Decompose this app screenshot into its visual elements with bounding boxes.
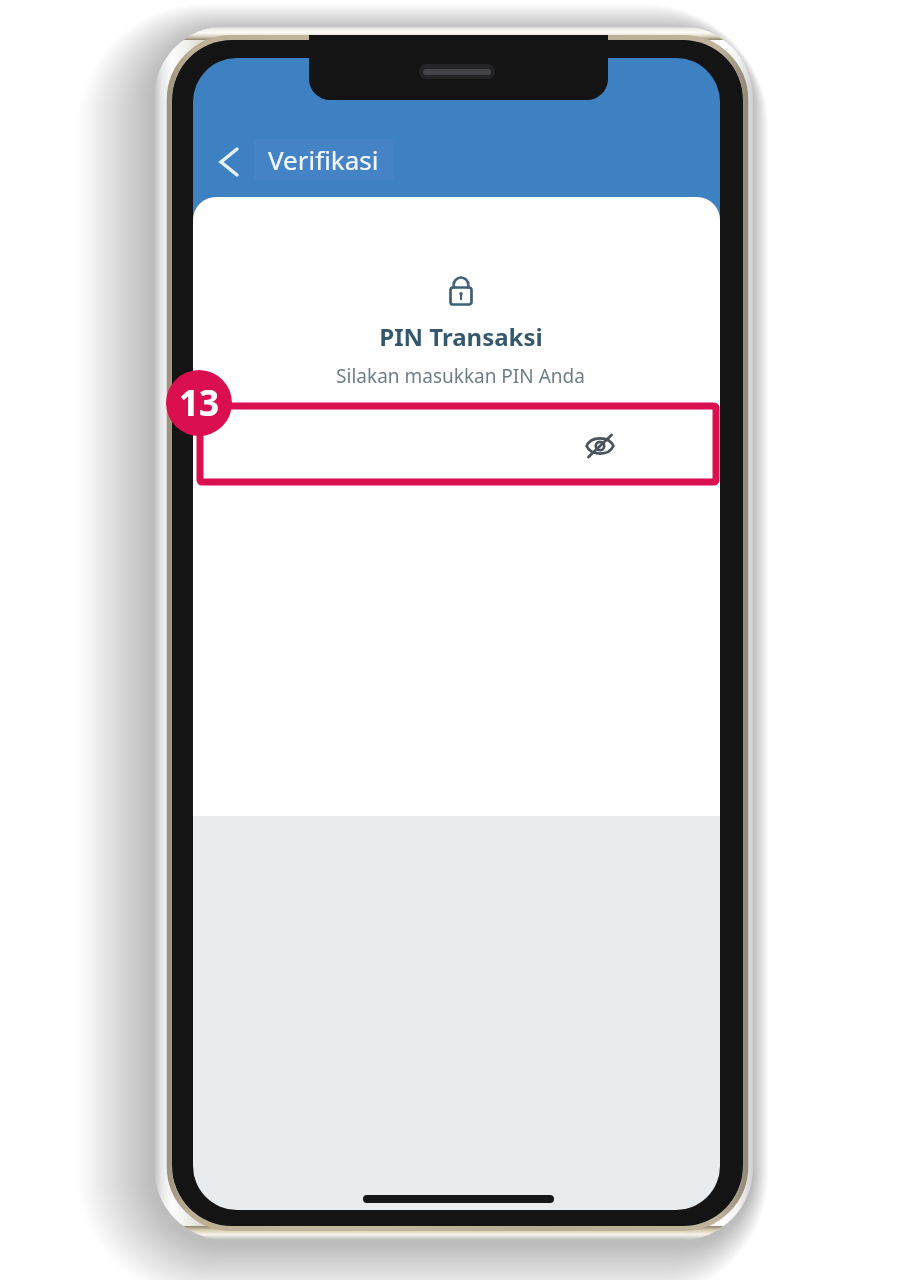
- staticText: 13: [179, 379, 220, 427]
- staticText: PIN Transaksi: [379, 320, 543, 353]
- button[interactable]: Show PIN: [193, 406, 720, 485]
- staticText: Silakan masukkan PIN Anda: [336, 363, 585, 389]
- button[interactable]: Back: [205, 136, 251, 188]
- button[interactable]: Verifikasi: [254, 139, 393, 180]
- staticText: Verifikasi: [268, 142, 379, 177]
- button[interactable]: Show PIN: [579, 425, 621, 467]
